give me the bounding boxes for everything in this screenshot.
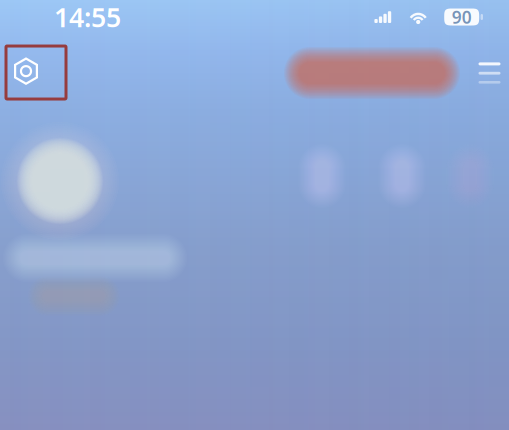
button[interactable]: Settings [5,45,67,100]
staticText: 14:55 [54,0,121,35]
staticText: 90 [452,5,472,28]
button[interactable]: Menu [474,51,505,95]
